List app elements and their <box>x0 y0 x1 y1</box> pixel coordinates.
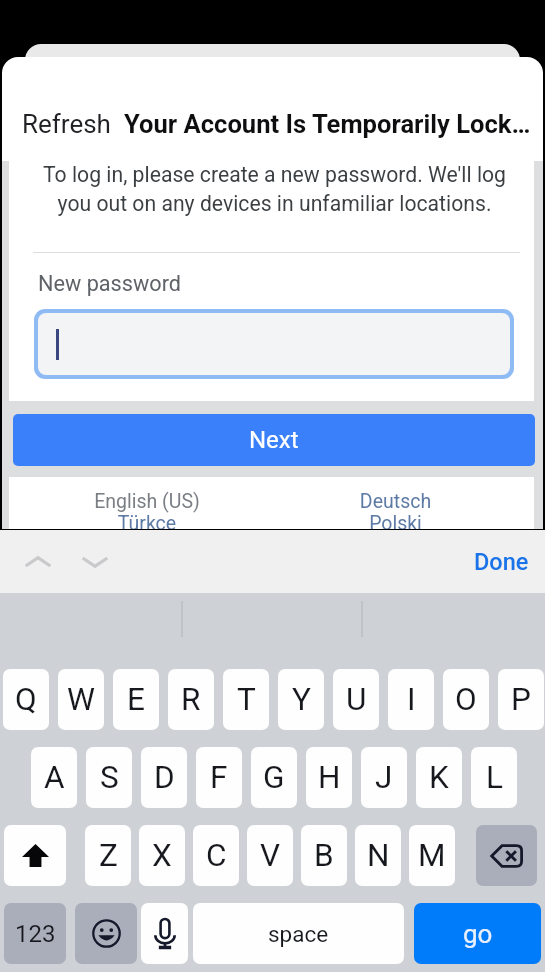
button[interactable]: X <box>139 825 185 886</box>
staticText: B <box>314 837 334 874</box>
staticText: H <box>318 759 341 796</box>
staticText: M <box>418 837 446 874</box>
button[interactable]: N <box>355 825 401 886</box>
button[interactable]: O <box>443 669 489 730</box>
button[interactable]: T <box>223 669 269 730</box>
staticText: J <box>375 759 393 796</box>
button[interactable]: Deutsch <box>271 490 520 513</box>
button[interactable]: 123 <box>4 903 66 964</box>
staticText: Done <box>474 548 529 576</box>
button[interactable]: P <box>498 669 544 730</box>
staticText: R <box>181 681 201 718</box>
button[interactable]: U <box>333 669 379 730</box>
button[interactable]: Done <box>458 538 545 586</box>
button[interactable]: Polski <box>271 512 520 529</box>
staticText: N <box>367 837 390 874</box>
staticText: S <box>100 759 119 796</box>
staticText: New password <box>38 271 182 296</box>
button[interactable]: W <box>58 669 104 730</box>
button[interactable]: A <box>31 747 77 808</box>
staticText: Your Account Is Temporarily Lock… <box>124 109 531 139</box>
staticText: K <box>429 759 449 796</box>
button[interactable]: Türkçe <box>23 512 271 529</box>
button[interactable]: G <box>251 747 297 808</box>
button[interactable]: Previous field <box>16 540 60 584</box>
staticText: C <box>206 837 227 874</box>
button[interactable]: English (US) <box>23 490 271 513</box>
button[interactable]: R <box>168 669 214 730</box>
button[interactable]: go <box>414 903 541 964</box>
staticText: T <box>237 681 256 718</box>
staticText: I <box>407 681 416 718</box>
button[interactable]: V <box>247 825 293 886</box>
button[interactable]: D <box>141 747 187 808</box>
button[interactable]: J <box>361 747 407 808</box>
button[interactable]: S <box>86 747 132 808</box>
button[interactable]: I <box>388 669 434 730</box>
button[interactable]: F <box>196 747 242 808</box>
button[interactable]: Emoji <box>75 903 137 964</box>
button[interactable]: Refresh <box>22 109 111 139</box>
staticText: X <box>152 837 172 874</box>
button[interactable]: Y <box>278 669 324 730</box>
staticText: Q <box>15 681 37 718</box>
staticText: Next <box>249 426 299 454</box>
staticText: To log in, please create a new password.… <box>26 162 523 216</box>
button[interactable]: H <box>306 747 352 808</box>
button[interactable]: B <box>301 825 347 886</box>
button[interactable]: E <box>113 669 159 730</box>
staticText: G <box>263 759 285 796</box>
button[interactable]: C <box>193 825 239 886</box>
staticText: E <box>127 681 145 718</box>
staticText: Z <box>99 837 118 874</box>
staticText: L <box>486 759 503 796</box>
button[interactable]: space <box>193 903 404 964</box>
button[interactable]: L <box>471 747 517 808</box>
staticText: U <box>346 681 367 718</box>
staticText: O <box>455 681 477 718</box>
staticText: Refresh <box>22 109 111 139</box>
staticText: D <box>154 759 175 796</box>
button[interactable]: Z <box>85 825 131 886</box>
button[interactable] <box>38 313 510 375</box>
staticText: space <box>268 921 329 947</box>
staticText: W <box>67 681 95 718</box>
button[interactable]: Backspace <box>476 825 537 886</box>
staticText: A <box>44 759 65 796</box>
staticText: P <box>511 681 531 718</box>
staticText: go <box>463 919 493 949</box>
button[interactable]: K <box>416 747 462 808</box>
button[interactable]: M <box>409 825 455 886</box>
button[interactable]: Voice input <box>141 903 188 964</box>
staticText: 123 <box>15 920 56 948</box>
staticText: F <box>210 759 228 796</box>
button[interactable]: Next <box>13 414 535 466</box>
button[interactable]: Shift <box>4 825 66 886</box>
staticText: Y <box>292 681 311 718</box>
button[interactable]: Q <box>3 669 49 730</box>
staticText: V <box>260 837 281 874</box>
button[interactable]: Next field <box>73 540 117 584</box>
